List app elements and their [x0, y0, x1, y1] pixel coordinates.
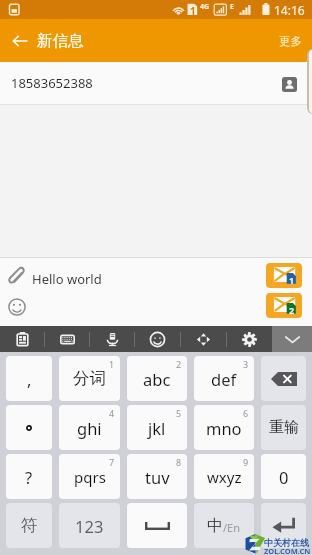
staticText: Hello world	[32, 270, 102, 288]
staticText: jkl	[148, 417, 166, 439]
staticText: 1	[289, 274, 295, 286]
staticText: 2	[176, 358, 182, 370]
staticText: 中关村在线	[264, 537, 309, 548]
staticText: 2	[289, 304, 295, 316]
staticText: ?	[25, 466, 33, 488]
button[interactable]: tuv	[127, 454, 187, 499]
button[interactable]: abc	[127, 356, 187, 401]
button[interactable]: def	[194, 356, 254, 401]
button[interactable]: Back	[7, 28, 33, 54]
staticText: 1	[190, 4, 196, 18]
staticText: ghi	[77, 417, 102, 439]
staticText: mno	[206, 417, 242, 439]
staticText: 18583652388	[11, 74, 93, 92]
button[interactable]: Send with SIM 2	[266, 293, 302, 318]
button[interactable]: Settings	[227, 326, 272, 352]
button[interactable]: Emoji	[4, 294, 29, 319]
button[interactable]: 123	[59, 503, 120, 548]
button[interactable]	[6, 405, 52, 450]
staticText: tuv	[145, 466, 170, 488]
button[interactable]: Voice input	[90, 326, 134, 352]
staticText: 9	[243, 456, 249, 468]
button[interactable]: Attach	[4, 264, 28, 288]
button[interactable]: 中	[194, 503, 254, 548]
button[interactable]: Move cursor	[181, 326, 226, 352]
button[interactable]: Contacts	[279, 74, 299, 94]
staticText: E	[230, 2, 234, 12]
staticText: 0	[279, 466, 289, 488]
staticText: 14:16	[274, 2, 305, 18]
button[interactable]	[261, 503, 306, 548]
button[interactable]: Keyboard layout	[45, 326, 89, 352]
staticText: ZOL.COM.CN	[264, 546, 311, 555]
button[interactable]: ,	[6, 356, 52, 401]
staticText: abc	[143, 368, 171, 390]
button[interactable]: 分词	[59, 356, 120, 401]
staticText: 5	[176, 407, 182, 419]
staticText: 新信息	[37, 31, 84, 51]
staticText: 6	[243, 407, 249, 419]
staticText: 123	[75, 515, 104, 537]
button[interactable]: 更多	[269, 26, 312, 56]
staticText: 8	[176, 456, 182, 468]
staticText: def	[211, 368, 237, 390]
staticText: ,	[27, 368, 32, 390]
staticText: 中	[207, 516, 223, 536]
button[interactable]: ?	[6, 454, 52, 499]
button[interactable]: pqrs	[59, 454, 120, 499]
staticText: /En	[223, 520, 241, 535]
button[interactable]: wxyz	[194, 454, 254, 499]
button[interactable]	[127, 503, 187, 548]
button[interactable]: jkl	[127, 405, 187, 450]
staticText: 分词	[73, 368, 106, 389]
staticText: 1	[109, 358, 115, 370]
staticText: wxyz	[207, 467, 242, 487]
button[interactable]: Emoji	[135, 326, 180, 352]
button[interactable]: 符	[6, 503, 52, 548]
staticText: 重输	[269, 418, 299, 437]
staticText: 7	[109, 456, 115, 468]
staticText: 符	[21, 515, 38, 536]
staticText: 4G	[200, 2, 210, 12]
button[interactable]: 0	[261, 454, 306, 499]
staticText: 更多	[279, 34, 302, 48]
button[interactable]: Send with SIM 1	[266, 263, 302, 288]
button[interactable]: Hide keyboard	[272, 326, 312, 352]
button[interactable]: Clipboard	[0, 326, 44, 352]
button[interactable]: mno	[194, 405, 254, 450]
staticText: 3	[243, 358, 249, 370]
button[interactable]: ghi	[59, 405, 120, 450]
button[interactable]: 重输	[261, 405, 306, 450]
staticText: pqrs	[74, 467, 106, 487]
staticText: 4	[109, 407, 115, 419]
button[interactable]	[261, 356, 306, 401]
